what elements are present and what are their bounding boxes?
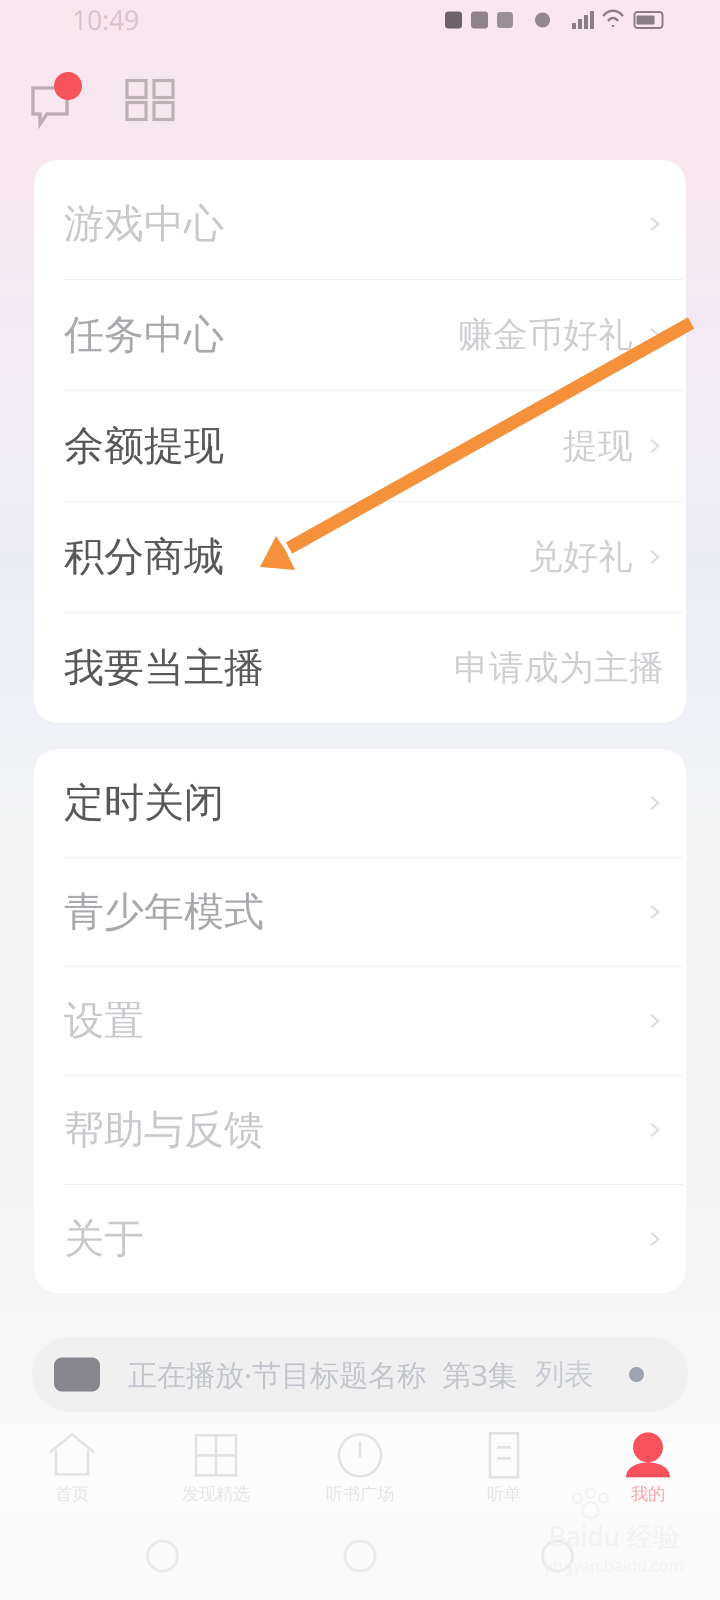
button[interactable]: 关于	[34, 1185, 686, 1293]
staticText: 赚金币好礼	[458, 314, 633, 356]
button[interactable]: 帮助与反馈	[34, 1076, 686, 1184]
button[interactable]: 设置	[34, 967, 686, 1075]
button[interactable]: Recents	[522, 1521, 592, 1591]
button[interactable]: Home	[325, 1521, 395, 1591]
staticText: 听书广场	[326, 1483, 394, 1505]
staticText: 第3集	[442, 1355, 517, 1394]
staticText: 我的	[631, 1483, 665, 1505]
button[interactable]: Back	[127, 1521, 197, 1591]
button[interactable]: 发现精选	[144, 1424, 288, 1512]
button[interactable]: 余额提现	[34, 391, 686, 501]
staticText: 申请成为主播	[454, 647, 664, 689]
staticText: 兑好礼	[528, 536, 633, 578]
staticText: jingyan.baidu.com	[545, 1555, 684, 1576]
staticText: 定时关闭	[64, 778, 224, 827]
button[interactable]: 任务中心	[34, 280, 686, 390]
staticText: Baidu 经验	[548, 1518, 680, 1554]
staticText: 提现	[563, 425, 633, 467]
staticText: 发现精选	[182, 1483, 250, 1505]
staticText: 青少年模式	[64, 887, 264, 936]
button[interactable]: 青少年模式	[34, 858, 686, 966]
staticText: 听单	[487, 1483, 521, 1505]
button[interactable]: 我要当主播	[34, 613, 686, 723]
staticText: 帮助与反馈	[64, 1105, 264, 1154]
button[interactable]: 我的	[576, 1424, 720, 1512]
staticText: 首页	[55, 1483, 89, 1505]
button[interactable]: Messages	[24, 74, 76, 126]
staticText: 任务中心	[64, 310, 224, 359]
button[interactable]: 听单	[432, 1424, 576, 1512]
button[interactable]: 定时关闭	[34, 749, 686, 857]
button[interactable]: 积分商城	[34, 502, 686, 612]
staticText: 游戏中心	[64, 199, 224, 248]
button[interactable]: 正在播放·节目标题名称	[32, 1337, 688, 1412]
staticText: 我要当主播	[64, 643, 264, 692]
staticText: 正在播放·节目标题名称	[128, 1355, 426, 1394]
staticText: 设置	[64, 996, 144, 1045]
staticText: 积分商城	[64, 532, 224, 581]
button[interactable]: 游戏中心	[34, 169, 686, 279]
button[interactable]: 首页	[0, 1424, 144, 1512]
button[interactable]: Categories	[124, 76, 176, 123]
staticText: 余额提现	[64, 421, 224, 470]
staticText: 关于	[64, 1214, 144, 1263]
staticText: 10:49	[72, 2, 139, 38]
staticText: 列表	[535, 1356, 593, 1392]
button[interactable]: 听书广场	[288, 1424, 432, 1512]
